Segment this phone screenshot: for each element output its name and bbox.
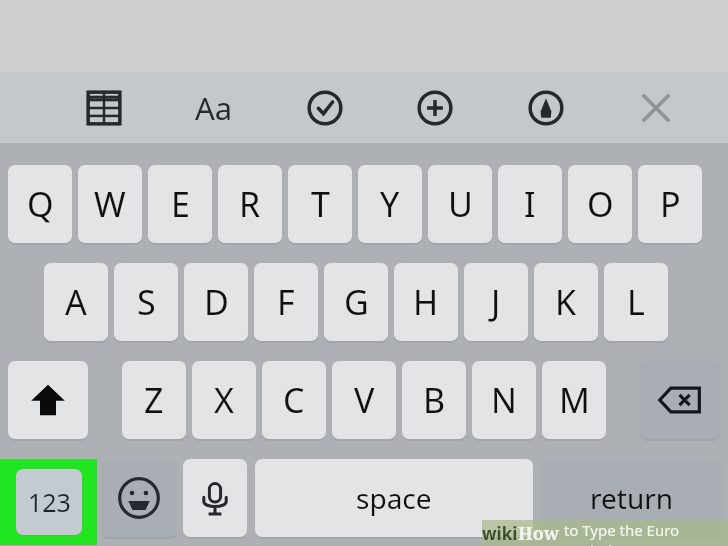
button[interactable]: Checklist [299,82,351,134]
staticText: I [524,181,536,227]
staticText: Z [144,377,164,423]
button[interactable]: O [568,165,632,243]
staticText: Aa [195,87,233,129]
staticText: H [413,279,439,325]
button[interactable]: B [402,361,466,439]
staticText: S [137,279,156,325]
button[interactable]: H [394,263,458,341]
button[interactable]: L [604,263,668,341]
button[interactable]: J [464,263,528,341]
staticText: E [171,181,190,227]
staticText: X [214,377,234,423]
staticText: How [518,521,560,546]
button[interactable]: K [534,263,598,341]
button[interactable]: Close [630,82,682,134]
button[interactable]: Markup [520,82,572,134]
staticText: B [423,377,446,423]
button[interactable]: C [262,361,326,439]
staticText: O [587,181,614,227]
staticText: wiki [482,522,518,545]
button[interactable]: X [192,361,256,439]
button[interactable]: Emoji [101,459,177,537]
staticText: space [356,479,432,517]
staticText: P [660,181,681,227]
staticText: N [491,377,517,423]
staticText: W [94,181,126,227]
button[interactable]: I [498,165,562,243]
staticText: T [311,181,330,227]
staticText: K [555,279,577,325]
button[interactable]: Text format [188,82,240,134]
button[interactable]: Table [78,82,130,134]
button[interactable]: Add [409,82,461,134]
button[interactable]: Z [122,361,186,439]
button[interactable]: T [288,165,352,243]
staticText: L [627,279,645,325]
button[interactable]: Shift [8,361,88,439]
button[interactable]: U [428,165,492,243]
staticText: to Type the Euro Symbol [560,520,728,546]
button[interactable]: M [542,361,606,439]
staticText: M [559,377,590,423]
button[interactable]: P [638,165,702,243]
button[interactable]: Q [8,165,72,243]
button[interactable]: F [254,263,318,341]
button[interactable]: R [218,165,282,243]
button[interactable]: Numbers [16,469,82,535]
button[interactable]: Dictation [183,459,247,537]
staticText: G [344,279,369,325]
staticText: R [239,181,261,227]
button[interactable]: G [324,263,388,341]
button[interactable]: E [148,165,212,243]
button[interactable]: D [184,263,248,341]
staticText: F [277,279,295,325]
staticText: 123 [28,485,71,519]
button[interactable]: return [541,459,722,537]
staticText: return [590,479,674,517]
staticText: C [283,377,305,423]
staticText: Y [380,181,400,227]
button[interactable]: N [472,361,536,439]
button[interactable]: S [114,263,178,341]
staticText: U [448,181,473,227]
button[interactable]: Y [358,165,422,243]
staticText: V [354,377,375,423]
staticText: D [204,279,229,325]
button[interactable]: space [255,459,533,537]
button[interactable]: A [44,263,108,341]
staticText: A [65,279,87,325]
button[interactable]: Backspace [640,361,720,439]
button[interactable]: V [332,361,396,439]
staticText: Q [27,181,54,227]
button[interactable]: W [78,165,142,243]
staticText: J [491,279,501,325]
